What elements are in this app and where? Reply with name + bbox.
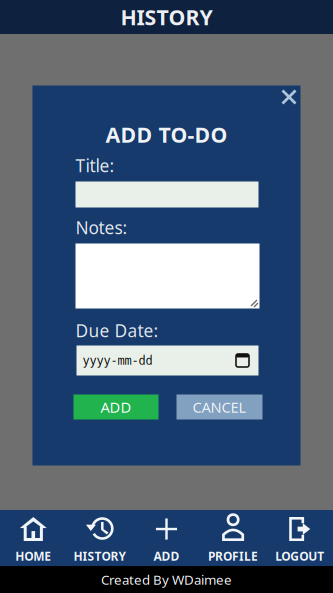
staticText: ADD [153,548,179,564]
staticText: Created By WDaimee [101,571,232,588]
button[interactable]: ADD [133,507,200,569]
staticText: HISTORY [73,548,126,564]
staticText: LOGOUT [275,548,324,564]
staticText: Title: [75,154,114,177]
staticText: HOME [15,548,51,564]
button[interactable]: LOGOUT [266,507,333,569]
staticText: CANCEL [192,397,246,417]
staticText: Notes: [75,216,127,239]
staticText: ADD [100,397,131,417]
staticText: PROFILE [208,548,258,564]
button[interactable]: Close [274,82,303,111]
staticText: yyyy-mm-dd [82,354,152,367]
button[interactable]: HOME [0,507,67,569]
staticText: ADD TO-DO [105,120,227,149]
button[interactable]: HISTORY [67,507,133,569]
button[interactable]: PROFILE [200,507,266,569]
staticText: Due Date: [75,319,158,342]
button[interactable]: ADD [73,394,158,419]
staticText: HISTORY [120,3,212,31]
button[interactable]: CANCEL [176,394,262,419]
